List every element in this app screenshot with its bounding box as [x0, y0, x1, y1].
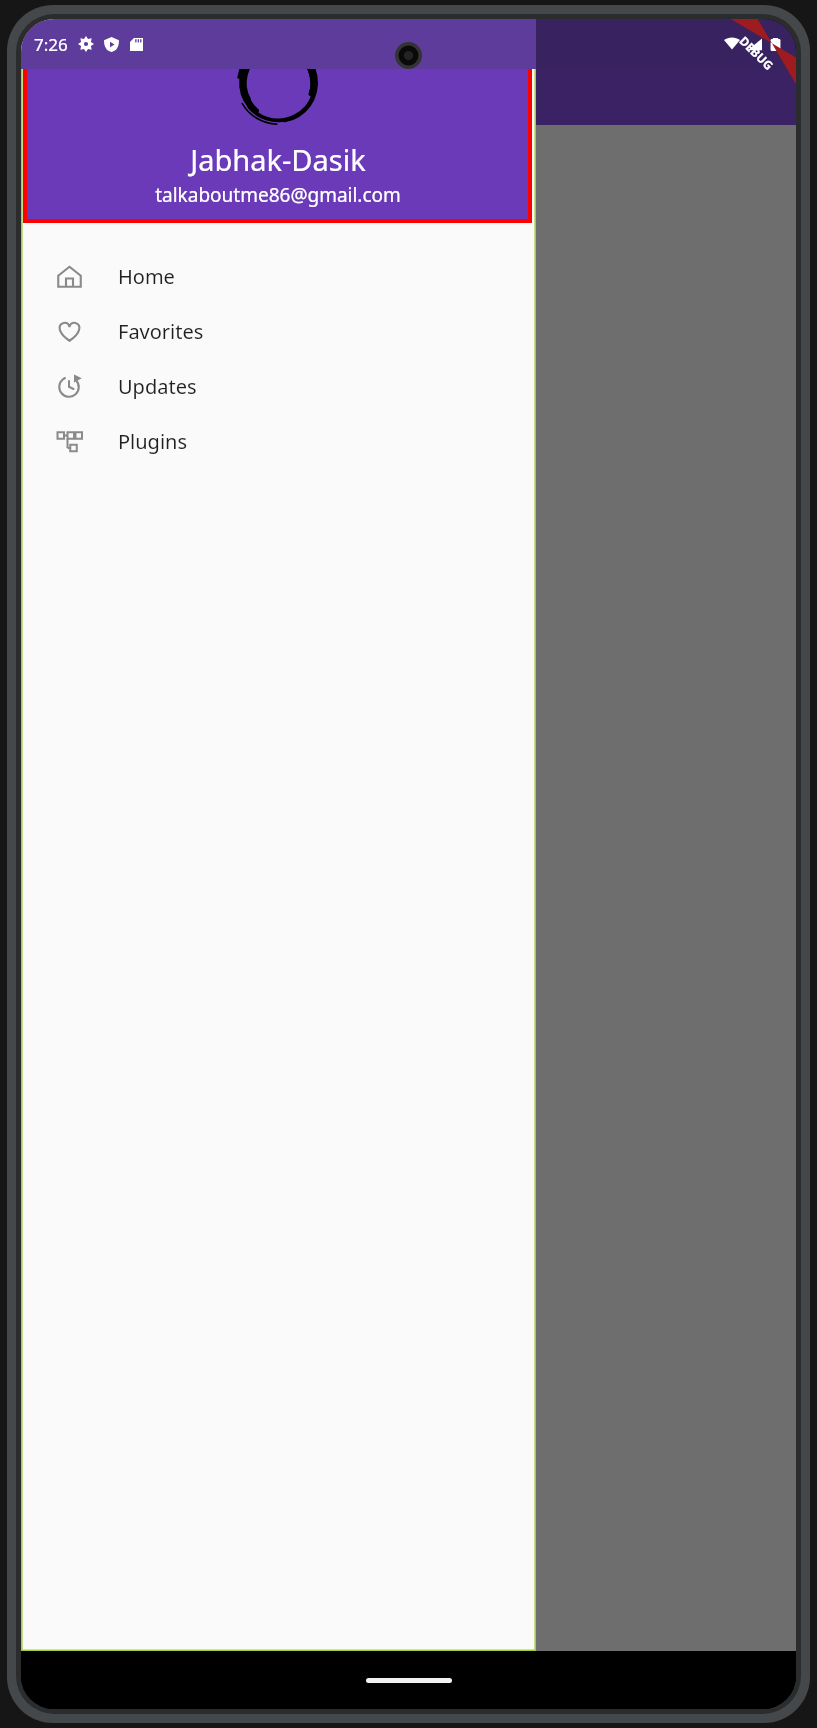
staticText: DEBUG — [736, 32, 777, 73]
button[interactable]: Plugins — [21, 414, 536, 469]
staticText: Plugins — [118, 428, 188, 455]
other: Plugins — [57, 429, 82, 454]
staticText: Home — [118, 263, 175, 290]
button[interactable]: Updates — [21, 359, 536, 414]
other: Updates — [57, 374, 82, 399]
other: Favorites — [57, 319, 82, 344]
staticText: talkaboutme86@gmail.com — [155, 182, 401, 208]
staticText: Updates — [118, 373, 197, 400]
button[interactable]: Favorites — [21, 304, 536, 359]
button[interactable]: Home — [21, 249, 536, 304]
other: Home — [57, 264, 82, 289]
staticText: 7:26 — [34, 33, 68, 56]
staticText: Favorites — [118, 318, 204, 345]
staticText: Jabhak-Dasik — [190, 140, 366, 179]
